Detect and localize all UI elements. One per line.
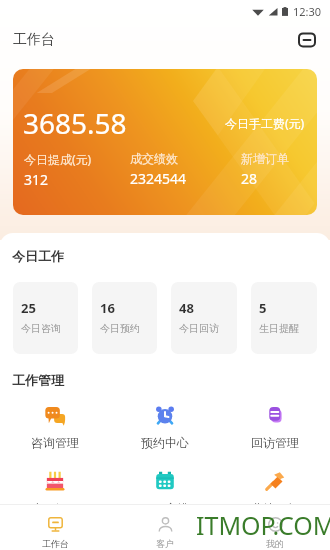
button[interactable]: 5 bbox=[251, 282, 317, 354]
staticText: 日程安排 bbox=[141, 501, 189, 516]
button[interactable]: 生日提醒 bbox=[0, 469, 110, 516]
staticText: 业绩目标 bbox=[251, 501, 299, 516]
staticText: 预约中心 bbox=[141, 435, 189, 450]
staticText: 312 bbox=[24, 170, 49, 189]
button[interactable]: 48 bbox=[171, 282, 237, 354]
button[interactable]: 客户 bbox=[110, 505, 220, 549]
staticText: 今日回访 bbox=[179, 322, 219, 335]
staticText: ITMOP.COM bbox=[196, 508, 330, 542]
staticText: 2324544 bbox=[130, 169, 187, 188]
staticText: 5 bbox=[259, 299, 267, 317]
staticText: 今日提成(元) bbox=[24, 151, 92, 167]
button[interactable]: 我的 bbox=[220, 505, 330, 549]
staticText: 25 bbox=[21, 299, 36, 317]
staticText: 工作管理 bbox=[12, 372, 64, 388]
staticText: 今日手工费(元) bbox=[225, 115, 305, 131]
staticText: 48 bbox=[179, 299, 194, 317]
staticText: 28 bbox=[241, 169, 258, 188]
button[interactable]: 25 bbox=[13, 282, 78, 354]
staticText: 3685.58 bbox=[23, 104, 127, 142]
staticText: 12:30 bbox=[293, 4, 322, 19]
button[interactable]: Workbench bbox=[295, 28, 319, 52]
staticText: 咨询管理 bbox=[31, 435, 79, 450]
button[interactable]: 预约中心 bbox=[110, 403, 220, 450]
button[interactable]: 回访管理 bbox=[220, 403, 330, 450]
staticText: 生日提醒 bbox=[259, 322, 299, 335]
staticText: 工作台 bbox=[42, 538, 69, 549]
staticText: 16 bbox=[100, 299, 115, 317]
button[interactable]: 咨询管理 bbox=[0, 403, 110, 450]
button[interactable]: 3685.58 bbox=[13, 69, 317, 215]
staticText: 今日工作 bbox=[12, 248, 64, 264]
staticText: 今日咨询 bbox=[21, 322, 61, 335]
staticText: 生日提醒 bbox=[31, 501, 79, 516]
staticText: 我的 bbox=[266, 538, 284, 549]
button[interactable]: 日程安排 bbox=[110, 469, 220, 516]
staticText: 新增订单 bbox=[241, 151, 289, 166]
staticText: 成交绩效 bbox=[130, 151, 178, 166]
staticText: 今日预约 bbox=[100, 322, 140, 335]
staticText: 工作台 bbox=[13, 31, 55, 49]
staticText: 回访管理 bbox=[251, 435, 299, 450]
button[interactable]: 16 bbox=[92, 282, 157, 354]
button[interactable]: 工作台 bbox=[0, 505, 110, 549]
button[interactable]: 业绩目标 bbox=[220, 469, 330, 516]
staticText: 客户 bbox=[156, 538, 174, 549]
